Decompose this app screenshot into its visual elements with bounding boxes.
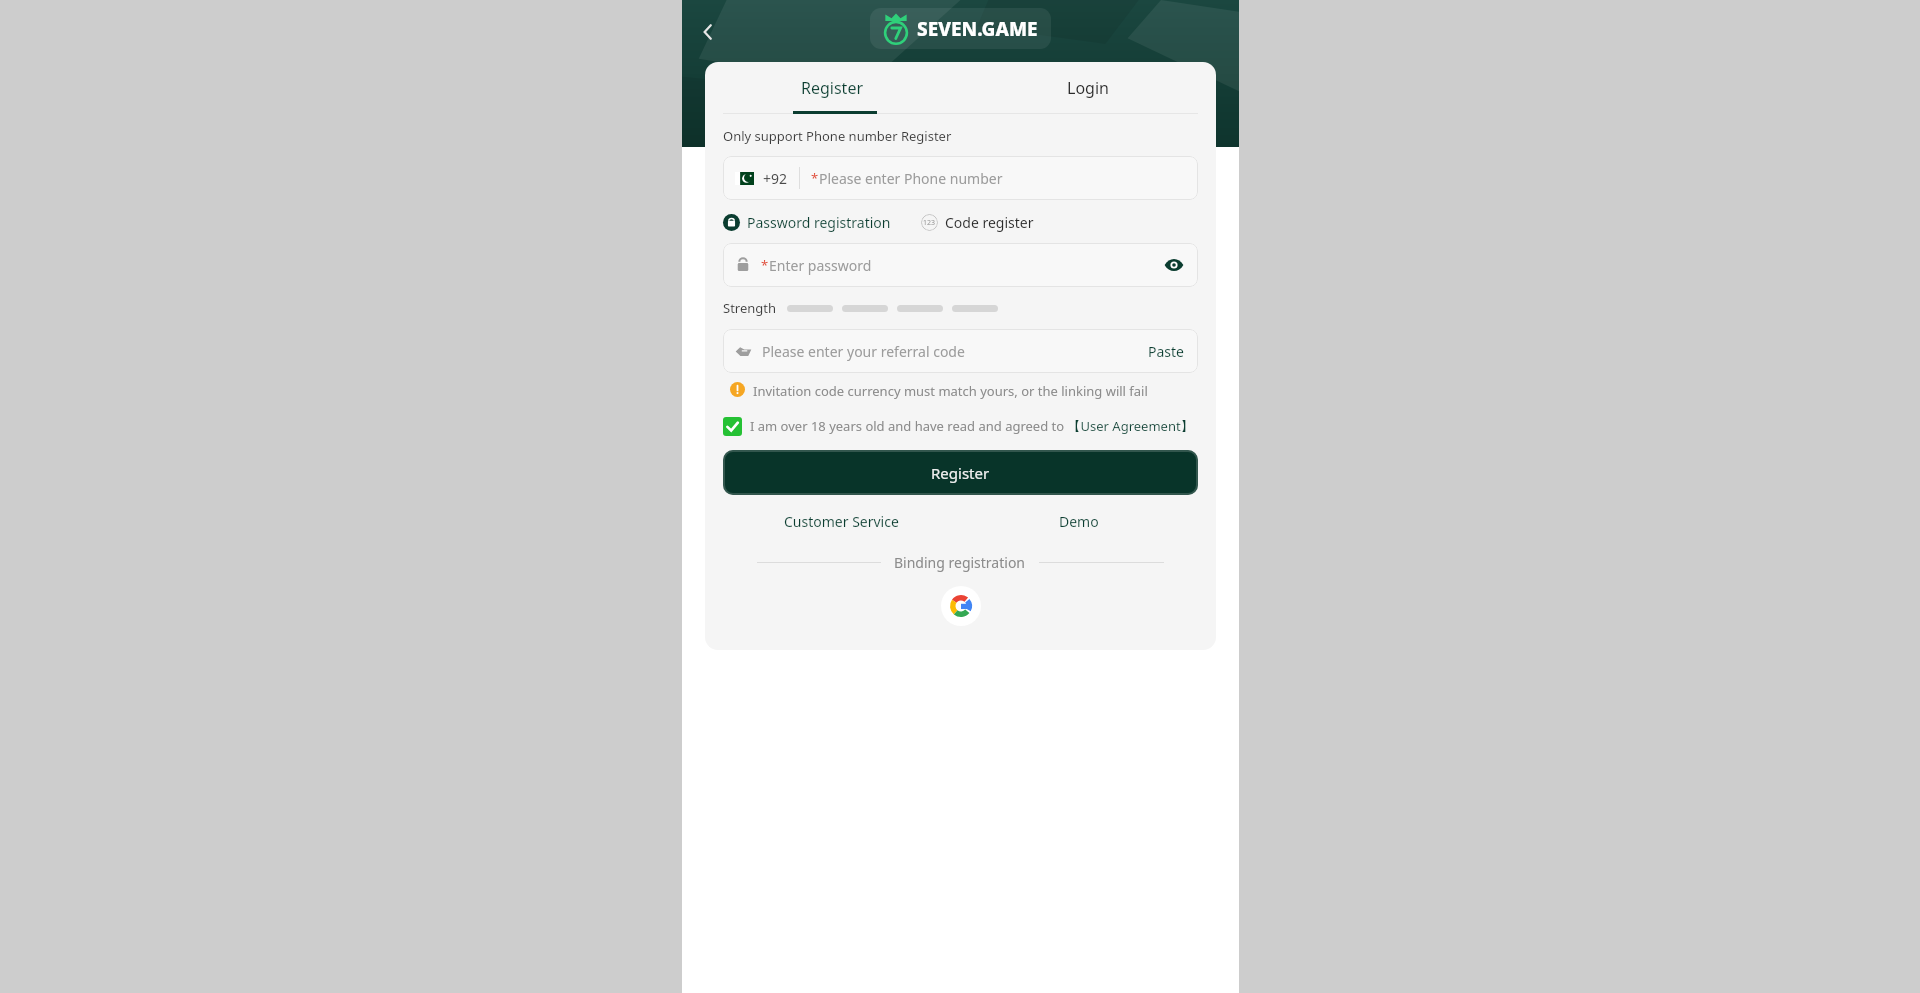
button[interactable]: 123 [921,213,1034,232]
staticText: Please enter Phone number [819,169,1003,188]
button[interactable]: Register [705,62,960,114]
button[interactable]: I am over 18 years old and have read and… [723,417,1198,436]
button[interactable]: SEVEN.GAME [883,13,1038,44]
staticText: Register [801,77,864,99]
button[interactable]: Back [688,12,728,52]
staticText: I am over 18 years old and have read and… [750,417,1194,435]
button[interactable]: Sign in with Google [941,586,981,626]
staticText: Demo [1059,512,1099,531]
staticText: SEVEN.GAME [917,16,1038,42]
staticText: Enter password [769,256,872,275]
button[interactable]: Register [723,450,1198,495]
staticText: Login [1067,77,1109,99]
button[interactable]: Show password [1162,253,1186,277]
button[interactable]: +92 [723,156,1198,200]
staticText: Paste [1148,342,1184,361]
staticText: Customer Service [784,512,899,531]
staticText: Binding registration [894,553,1026,572]
button[interactable]: Login [960,62,1216,114]
staticText: Strength [723,299,777,317]
button[interactable]: Password registration [723,213,891,232]
button[interactable]: Please enter your referral code [723,329,1198,373]
button[interactable]: Customer Service [723,506,960,537]
button[interactable]: * [723,243,1198,287]
staticText: Only support Phone number Register [723,127,952,145]
staticText: Password registration [747,213,891,232]
staticText: +92 [763,169,788,188]
button[interactable]: Paste [1146,337,1186,366]
button[interactable]: Demo [960,506,1198,537]
staticText: * [761,256,769,274]
staticText: Code register [945,213,1034,232]
staticText: Invitation code currency must match your… [753,382,1148,400]
staticText: Register [931,463,990,483]
staticText: 123 [923,218,936,228]
staticText: * [811,169,819,187]
staticText: Please enter your referral code [762,342,965,361]
